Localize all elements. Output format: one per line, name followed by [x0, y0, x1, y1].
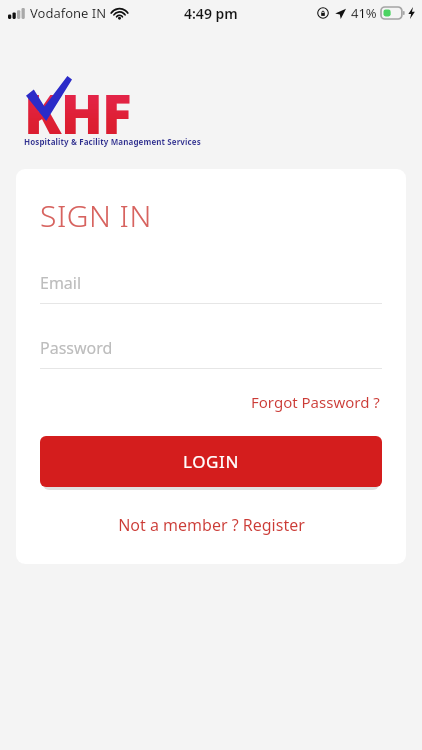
staticText: Email [40, 272, 82, 294]
button[interactable]: Forgot Password ? [249, 389, 382, 415]
staticText: 41% [351, 4, 377, 22]
button[interactable]: Email [40, 272, 382, 304]
staticText: SIGN IN [40, 195, 152, 236]
staticText: Vodafone IN [30, 4, 107, 22]
button[interactable]: Password [40, 337, 382, 369]
staticText: LOGIN [183, 450, 239, 473]
staticText: 4:49 pm [184, 4, 238, 23]
staticText: Forgot Password ? [251, 392, 380, 412]
button[interactable]: Not a member ? Register [40, 514, 382, 536]
staticText: KHFM [24, 75, 180, 135]
staticText: Not a member ? Register [118, 514, 305, 536]
button[interactable]: LOGIN [40, 436, 382, 487]
staticText: Hospitality & Facility Management Servic… [24, 136, 201, 147]
staticText: Password [40, 337, 113, 359]
